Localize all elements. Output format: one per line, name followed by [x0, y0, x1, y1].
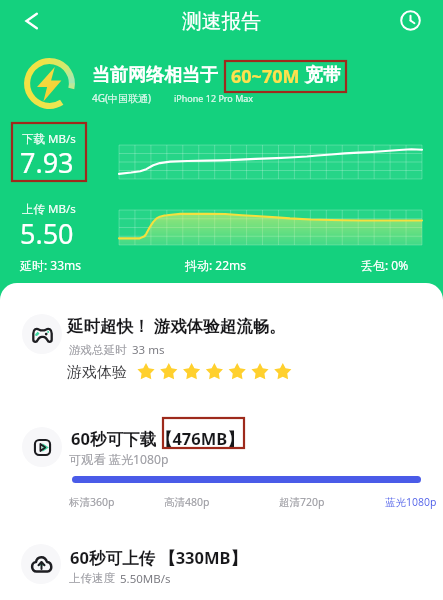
- staticText: 抖动: 22ms: [185, 257, 247, 273]
- staticText: 7.93: [20, 144, 74, 181]
- staticText: 可观看 蓝光1080p: [69, 451, 169, 468]
- staticText: iPhone 12 Pro Max: [174, 92, 254, 104]
- staticText: 高清480p: [164, 495, 210, 509]
- staticText: 60秒可上传 【330MB】: [70, 546, 248, 569]
- button[interactable]: [12, 416, 431, 516]
- staticText: 延时超快！ 游戏体验超流畅。: [67, 314, 286, 337]
- staticText: 游戏体验: [67, 363, 127, 382]
- staticText: 游戏总延时: [69, 343, 127, 357]
- staticText: 5.50MB/s: [120, 571, 171, 587]
- staticText: 上传速度: [69, 571, 115, 585]
- staticText: 延时: 33ms: [20, 257, 82, 273]
- staticText: 超清720p: [279, 495, 325, 509]
- staticText: 宽带: [305, 64, 341, 87]
- staticText: 标清360p: [69, 495, 115, 509]
- button[interactable]: History: [390, 0, 430, 40]
- button[interactable]: Back: [13, 1, 53, 41]
- staticText: 下载 MB/s: [22, 131, 76, 147]
- staticText: 4G(中国联通): [92, 91, 151, 105]
- staticText: 60秒可下载【476MB】: [71, 427, 244, 450]
- button[interactable]: [12, 303, 431, 391]
- staticText: 上传 MB/s: [22, 201, 76, 217]
- staticText: 蓝光1080p: [385, 495, 437, 509]
- button[interactable]: [12, 533, 431, 595]
- staticText: 60~70M: [231, 64, 300, 89]
- staticText: 33 ms: [132, 342, 165, 358]
- staticText: 当前网络相当于: [92, 64, 218, 87]
- staticText: 5.50: [20, 215, 74, 252]
- staticText: 丢包: 0%: [361, 257, 409, 273]
- staticText: 测速报告: [0, 9, 443, 34]
